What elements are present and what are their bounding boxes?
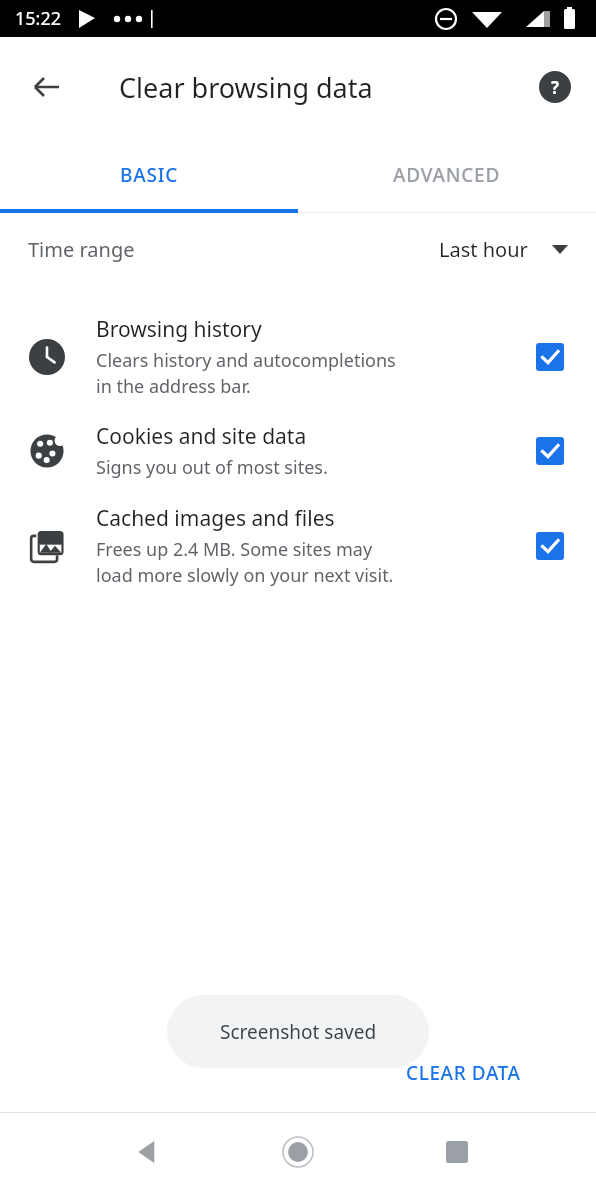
- button[interactable]: Cookies and site data: [0, 422, 596, 480]
- button[interactable]: Back: [118, 1123, 176, 1181]
- button[interactable]: Back: [22, 62, 72, 112]
- staticText: CLEAR DATA: [406, 1060, 521, 1086]
- button[interactable]: BASIC: [0, 137, 298, 213]
- button[interactable]: ADVANCED: [298, 137, 596, 213]
- staticText: Cached images and files: [96, 504, 335, 533]
- staticText: Frees up 2.4 MB. Some sites may load mor…: [96, 537, 394, 587]
- button[interactable]: Recents: [428, 1123, 486, 1181]
- button[interactable]: Cookies and site data: [528, 429, 572, 473]
- button[interactable]: CLEAR DATA: [390, 1052, 537, 1094]
- staticText: Browsing history: [96, 315, 262, 344]
- staticText: BASIC: [120, 162, 179, 188]
- staticText: 15:22: [15, 6, 62, 31]
- staticText: Clears history and autocompletions in th…: [96, 348, 396, 398]
- button[interactable]: Home: [269, 1123, 327, 1181]
- staticText: ?: [551, 76, 560, 99]
- button[interactable]: Browsing history: [528, 335, 572, 379]
- button[interactable]: Help: [532, 64, 578, 110]
- staticText: Time range: [28, 236, 135, 263]
- staticText: Clear browsing data: [119, 69, 373, 106]
- staticText: ADVANCED: [393, 162, 501, 188]
- staticText: Signs you out of most sites.: [96, 455, 328, 480]
- staticText: Cookies and site data: [96, 422, 307, 451]
- button[interactable]: Cached images and files: [528, 524, 572, 568]
- staticText: Last hour: [439, 236, 528, 263]
- button[interactable]: Time range: [0, 213, 596, 285]
- button[interactable]: Browsing history: [0, 315, 596, 398]
- staticText: Screenshot saved: [220, 1019, 377, 1045]
- button[interactable]: Cached images and files: [0, 504, 596, 587]
